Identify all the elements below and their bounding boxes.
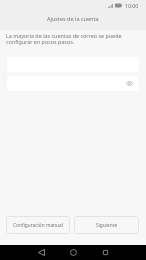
staticText: Siguiente [96, 222, 118, 229]
button[interactable]: Configuración manual [6, 216, 70, 234]
staticText: 10:00 [125, 2, 139, 9]
staticText: La mayoría de las cuentas de correo se p… [6, 32, 122, 46]
button[interactable]: Recientes [97, 245, 113, 260]
button[interactable]: Contraseña [7, 76, 139, 91]
button[interactable]: Atrás [33, 245, 49, 260]
staticText: Configuración manual [13, 222, 63, 229]
button[interactable]: Inicio [65, 245, 81, 260]
button[interactable]: Siguiente [74, 216, 139, 234]
staticText: Ajustes de la cuenta [47, 15, 99, 22]
button[interactable]: Mostrar contraseña [124, 78, 135, 89]
